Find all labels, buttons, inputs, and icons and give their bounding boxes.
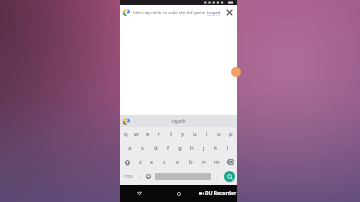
- button[interactable]: .: [213, 169, 221, 183]
- button[interactable]: i: [201, 127, 213, 141]
- button[interactable]: Home: [159, 185, 198, 202]
- staticText: hôm nay mình có code rèn thế game: [133, 10, 207, 16]
- staticText: s: [141, 144, 144, 152]
- button[interactable]: w: [131, 127, 142, 141]
- staticText: f: [167, 144, 170, 152]
- staticText: ,: [139, 173, 141, 180]
- button[interactable]: k: [210, 141, 222, 155]
- staticText: m: [214, 158, 220, 166]
- button[interactable]: ?123: [120, 169, 136, 183]
- button[interactable]: c: [158, 155, 171, 169]
- staticText: u: [193, 130, 197, 138]
- staticText: e: [146, 130, 150, 138]
- button[interactable]: u: [189, 127, 201, 141]
- button[interactable]: f: [162, 141, 174, 155]
- button[interactable]: x: [146, 155, 158, 169]
- button[interactable]: r: [153, 127, 165, 141]
- button[interactable]: a: [123, 141, 136, 155]
- button[interactable]: Back: [120, 185, 159, 202]
- button[interactable]: o: [213, 127, 225, 141]
- button[interactable]: v: [171, 155, 184, 169]
- staticText: ngạnh: [172, 118, 186, 124]
- staticText: y: [181, 130, 185, 138]
- staticText: h: [190, 144, 194, 152]
- staticText: p: [229, 130, 233, 138]
- button[interactable]: e: [142, 127, 153, 141]
- button[interactable]: s: [136, 141, 149, 155]
- staticText: w: [134, 130, 139, 138]
- button[interactable]: d: [149, 141, 162, 155]
- staticText: hispad: [207, 10, 221, 16]
- button[interactable]: l: [222, 141, 234, 155]
- staticText: o: [217, 130, 221, 138]
- button[interactable]: n: [197, 155, 210, 169]
- staticText: g: [178, 144, 182, 152]
- button[interactable]: q: [120, 127, 131, 141]
- button[interactable]: j: [198, 141, 210, 155]
- button[interactable]: Shift: [120, 155, 134, 169]
- staticText: l: [227, 144, 229, 152]
- button[interactable]: g: [174, 141, 186, 155]
- staticText: n: [202, 158, 206, 166]
- staticText: .: [216, 173, 218, 180]
- button[interactable]: Clear search: [225, 8, 234, 17]
- staticText: t: [170, 130, 173, 138]
- button[interactable]: Emoji: [144, 169, 153, 183]
- button[interactable]: Backspace: [223, 155, 237, 169]
- staticText: d: [154, 144, 158, 152]
- staticText: ?123: [124, 174, 133, 179]
- button[interactable]: ,: [136, 169, 144, 183]
- staticText: q: [124, 130, 128, 138]
- staticText: DU Recorder: [205, 190, 237, 197]
- staticText: x: [150, 158, 154, 166]
- button[interactable]: z: [134, 155, 146, 169]
- staticText: k: [214, 144, 218, 152]
- staticText: j: [203, 144, 205, 152]
- button[interactable]: h: [186, 141, 198, 155]
- button[interactable]: p: [225, 127, 237, 141]
- button[interactable]: Search: [224, 171, 235, 182]
- button[interactable]: t: [165, 127, 177, 141]
- staticText: v: [176, 158, 180, 166]
- button[interactable]: y: [177, 127, 189, 141]
- staticText: i: [206, 130, 208, 138]
- staticText: a: [128, 144, 132, 152]
- button[interactable]: m: [210, 155, 223, 169]
- button[interactable]: ngạnh: [120, 115, 237, 127]
- button[interactable]: b: [184, 155, 197, 169]
- staticText: z: [139, 158, 142, 166]
- staticText: c: [163, 158, 166, 166]
- button[interactable]: hôm nay mình có code rèn thế game: [120, 5, 237, 20]
- staticText: b: [189, 158, 193, 166]
- staticText: r: [158, 130, 161, 138]
